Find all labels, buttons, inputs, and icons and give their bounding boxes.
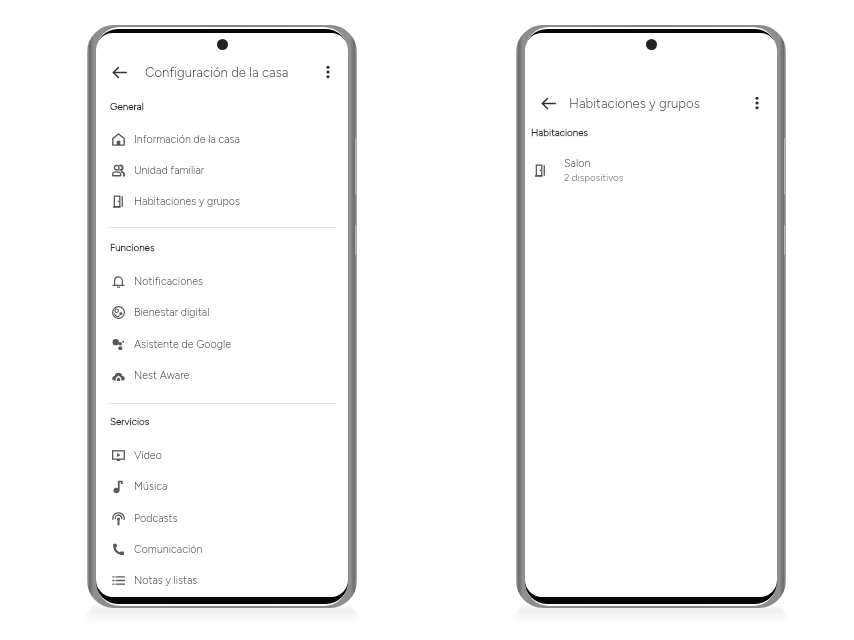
button[interactable]: Notas y listas xyxy=(96,567,348,593)
staticText: Habitaciones y grupos xyxy=(134,195,241,208)
staticText: Unidad familiar xyxy=(134,164,205,177)
button[interactable]: Habitaciones y grupos xyxy=(96,188,348,214)
staticText: Habitaciones xyxy=(531,127,589,139)
button[interactable]: Back xyxy=(533,88,563,118)
button[interactable]: Salon xyxy=(525,153,777,187)
staticText: Notificaciones xyxy=(134,275,204,288)
staticText: Salon xyxy=(564,157,591,170)
staticText: General xyxy=(110,101,144,113)
button[interactable]: Nest Aware xyxy=(96,362,348,388)
staticText: Configuración de la casa xyxy=(145,64,289,80)
button[interactable]: Asistente de Google xyxy=(96,331,348,357)
button[interactable]: Información de la casa xyxy=(96,126,348,152)
button[interactable]: Unidad familiar xyxy=(96,157,348,183)
staticText: Podcasts xyxy=(134,512,178,525)
button[interactable]: Notificaciones xyxy=(96,268,348,294)
staticText: 2 dispositivos xyxy=(564,172,624,184)
button[interactable]: Back xyxy=(104,57,134,87)
staticText: Asistente de Google xyxy=(134,338,231,351)
staticText: Habitaciones y grupos xyxy=(569,95,700,111)
button[interactable]: Podcasts xyxy=(96,505,348,531)
button[interactable]: More options xyxy=(314,58,342,86)
staticText: Información de la casa xyxy=(134,133,240,146)
staticText: Servicios xyxy=(110,416,150,428)
staticText: Funciones xyxy=(110,242,155,254)
staticText: Notas y listas xyxy=(134,574,198,587)
button[interactable]: Música xyxy=(96,473,348,499)
button[interactable]: More options xyxy=(743,89,771,117)
staticText: Bienestar digital xyxy=(134,306,210,319)
staticText: Música xyxy=(134,480,168,493)
staticText: Comunicación xyxy=(134,543,203,556)
button[interactable]: Comunicación xyxy=(96,536,348,562)
button[interactable]: Bienestar digital xyxy=(96,299,348,325)
staticText: Vídeo xyxy=(134,449,162,462)
button[interactable]: Vídeo xyxy=(96,442,348,468)
staticText: Nest Aware xyxy=(134,369,190,382)
